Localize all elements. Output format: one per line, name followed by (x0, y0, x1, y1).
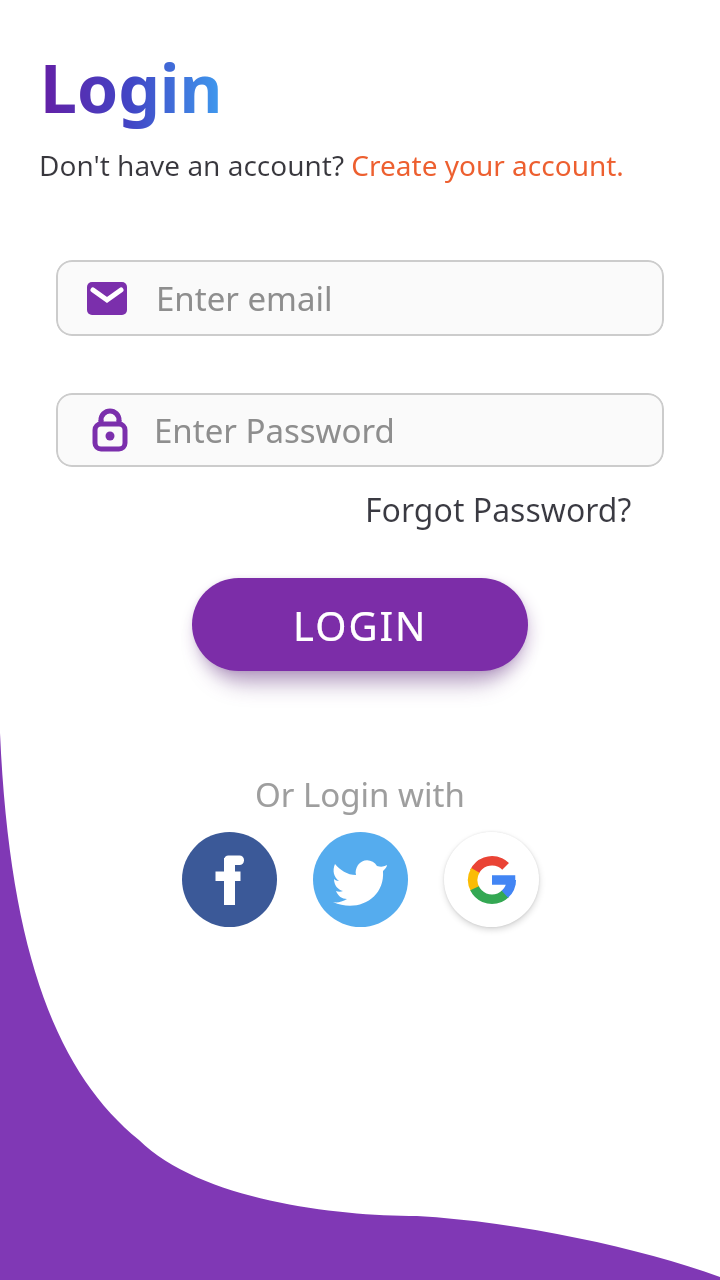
staticText: Enter Password (154, 408, 395, 453)
button[interactable]: Forgot Password? (365, 488, 632, 532)
staticText: LOGIN (293, 598, 428, 652)
button[interactable]: Enter Password (56, 393, 664, 467)
button[interactable]: LOGIN (192, 578, 528, 671)
staticText: Login (40, 42, 223, 132)
button[interactable] (182, 832, 277, 927)
button[interactable] (444, 832, 539, 927)
button[interactable]: Don't have an account? Create your accou… (39, 146, 624, 184)
staticText: Enter email (156, 276, 333, 321)
staticText: Or Login with (255, 772, 465, 817)
button[interactable] (313, 832, 408, 927)
button[interactable]: Enter email (56, 260, 664, 336)
